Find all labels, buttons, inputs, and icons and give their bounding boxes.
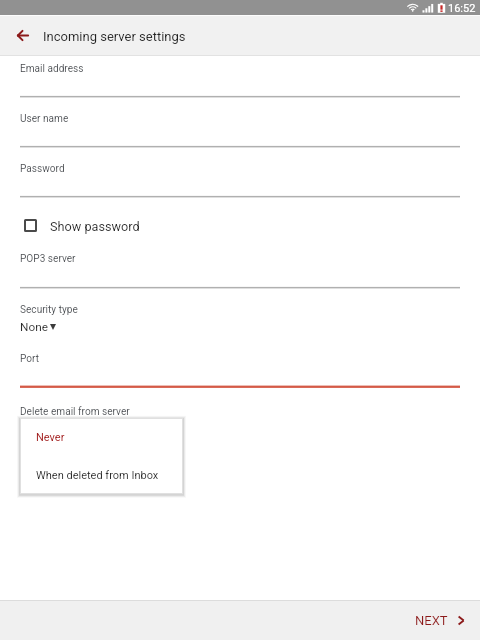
staticText: Never xyxy=(36,431,65,444)
staticText: Delete email from server xyxy=(20,406,130,418)
button[interactable]: Show password xyxy=(0,212,480,238)
staticText: Incoming server settings xyxy=(43,29,186,44)
button[interactable]: When deleted from Inbox xyxy=(20,456,183,494)
button[interactable]: Never xyxy=(20,418,183,456)
button[interactable]: None xyxy=(20,318,62,334)
staticText: None xyxy=(20,320,48,334)
staticText: Port xyxy=(20,353,40,365)
staticText: Password xyxy=(20,163,65,175)
staticText: POP3 server xyxy=(20,253,76,265)
staticText: 16:52 xyxy=(448,2,476,15)
staticText: Security type xyxy=(20,304,78,316)
staticText: When deleted from Inbox xyxy=(36,469,159,482)
staticText: NEXT xyxy=(415,613,448,628)
staticText: Email address xyxy=(20,63,84,75)
button[interactable]: NEXT xyxy=(415,613,464,628)
staticText: Show password xyxy=(50,219,140,234)
button[interactable]: Back xyxy=(0,16,43,55)
staticText: User name xyxy=(20,113,69,125)
